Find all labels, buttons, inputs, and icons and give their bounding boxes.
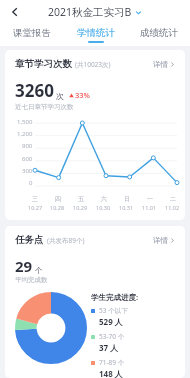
button[interactable]: 课堂报告 (0, 24, 64, 46)
staticText: 10.27 (28, 204, 43, 211)
staticText: 平均完成数 (15, 276, 48, 284)
staticText: 五 (78, 195, 84, 203)
staticText: 章节学习次数 (15, 58, 72, 70)
staticText: 三 (32, 195, 38, 203)
staticText: 近七日章节学习次数 (15, 103, 74, 111)
staticText: 53 个以下 (99, 306, 128, 315)
staticText: 10.31 (119, 204, 134, 211)
staticText: 六 (101, 195, 107, 203)
staticText: 900 (22, 142, 33, 150)
staticText: 1,200 (17, 130, 33, 138)
staticText: 29 (15, 256, 33, 276)
staticText: 10.30 (96, 204, 111, 211)
staticText: 成绩统计 (140, 27, 178, 39)
staticText: 10.29 (73, 204, 88, 211)
staticText: 71-89 个 (99, 358, 125, 367)
staticText: 600 (22, 155, 33, 163)
staticText: 次 (56, 91, 64, 101)
staticText: 148 人 (99, 368, 123, 378)
staticText: 33% (75, 90, 90, 100)
staticText: 一 (147, 195, 153, 203)
staticText: 学情统计 (77, 27, 115, 39)
staticText: 四 (55, 195, 61, 203)
button[interactable]: 学情统计 (64, 24, 127, 46)
staticText: 任务点 (15, 234, 44, 246)
staticText: 1,500 (17, 118, 33, 126)
staticText: 529 人 (99, 316, 123, 327)
button[interactable]: Back (6, 3, 24, 21)
staticText: 2021秋金工实习B (48, 5, 132, 19)
staticText: 0 (29, 179, 33, 187)
button[interactable]: 成绩统计 (127, 24, 190, 46)
staticText: 300 (22, 167, 33, 175)
staticText: 学生完成进度: (91, 292, 139, 302)
staticText: 11.02 (165, 204, 180, 211)
staticText: 二 (170, 195, 176, 203)
staticText: 详情 (153, 236, 168, 245)
staticText: 个 (35, 266, 43, 275)
staticText: (共发布89个) (47, 236, 85, 245)
staticText: 课堂报告 (13, 27, 51, 39)
staticText: 53-70 个 (99, 332, 125, 341)
staticText: 37 人 (99, 342, 119, 353)
staticText: 3260 (15, 79, 54, 102)
staticText: 11.01 (142, 204, 157, 211)
button[interactable]: 2021秋金工实习B (48, 5, 142, 19)
button[interactable]: 详情 (153, 236, 175, 245)
staticText: 10.28 (50, 204, 65, 211)
staticText: 详情 (153, 60, 168, 69)
staticText: 日 (124, 195, 130, 203)
staticText: (共10023次) (75, 60, 111, 69)
button[interactable]: 详情 (153, 60, 175, 69)
